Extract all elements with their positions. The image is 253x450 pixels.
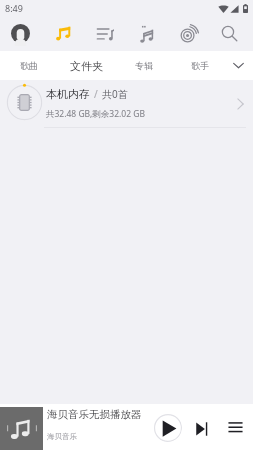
button[interactable]: Radio <box>169 16 209 51</box>
button[interactable]: Search <box>209 16 249 51</box>
button[interactable]: Songs <box>43 16 83 51</box>
staticText: 海贝音乐 <box>47 432 77 441</box>
button[interactable]: Play <box>153 413 182 442</box>
staticText: / <box>94 87 98 101</box>
staticText: 8:49 <box>5 2 23 14</box>
button[interactable]: Show all tabs <box>224 51 253 80</box>
staticText: 共32.48 GB,剩余32.02 GB <box>46 108 145 120</box>
staticText: 歌曲 <box>20 60 38 71</box>
staticText: 歌手 <box>191 60 209 71</box>
staticText: 海贝音乐无损播放器 <box>47 408 142 421</box>
staticText: 文件夹 <box>70 59 103 73</box>
staticText: 共0首 <box>102 87 128 101</box>
button[interactable]: 歌手 <box>174 51 226 80</box>
button[interactable]: Hi-Res <box>127 16 167 51</box>
button[interactable]: Next track <box>190 417 214 441</box>
button[interactable]: 文件夹 <box>60 51 112 80</box>
button[interactable]: Account <box>0 16 40 51</box>
button[interactable]: Playing queue <box>222 414 248 440</box>
button[interactable]: 专辑 <box>118 51 170 80</box>
button[interactable]: Now playing <box>0 407 43 450</box>
button[interactable]: Playlists <box>85 16 125 51</box>
staticText: 专辑 <box>135 60 153 71</box>
button[interactable]: 歌曲 <box>3 51 55 80</box>
staticText: 本机内存 <box>46 87 90 101</box>
button[interactable]: 本机内存 <box>0 80 253 128</box>
